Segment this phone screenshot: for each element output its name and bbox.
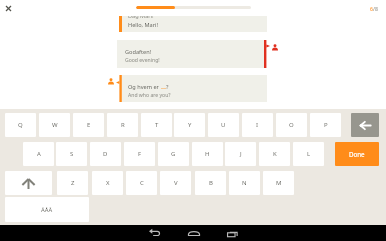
button[interactable]: L [293, 142, 324, 166]
button[interactable]: ÄÅÂ [5, 197, 89, 222]
button[interactable]: S [56, 142, 87, 166]
button[interactable]: B [195, 171, 226, 195]
button[interactable]: R [107, 113, 138, 137]
button[interactable]: J [225, 142, 256, 166]
button[interactable]: Done [335, 142, 379, 166]
staticText: B [209, 179, 213, 187]
staticText: Godaften! [125, 48, 152, 56]
button[interactable]: T [141, 113, 172, 137]
button[interactable]: U [208, 113, 239, 137]
staticText: T [155, 121, 159, 129]
staticText: W [52, 121, 58, 129]
staticText: Z [71, 179, 75, 187]
staticText: X [106, 179, 110, 187]
button[interactable]: W [39, 113, 70, 137]
button[interactable]: Back [138, 225, 171, 241]
staticText: K [273, 150, 277, 158]
button[interactable]: Recents [216, 225, 249, 241]
button[interactable]: C [126, 171, 157, 195]
button[interactable]: E [73, 113, 104, 137]
button[interactable]: P [310, 113, 341, 137]
staticText: Good evening! [125, 57, 160, 64]
staticText: /8 [373, 5, 378, 12]
staticText: F [138, 150, 142, 158]
staticText: E [87, 121, 91, 129]
button[interactable]: O [276, 113, 307, 137]
staticText: C [140, 179, 144, 187]
staticText: Dag Mari! [128, 16, 154, 20]
button[interactable]: M [263, 171, 294, 195]
staticText: D [103, 150, 108, 158]
staticText: And who are you? [128, 92, 171, 99]
staticText: H [205, 150, 210, 158]
staticText: V [174, 179, 178, 187]
button[interactable]: Y [174, 113, 205, 137]
button[interactable]: Q [5, 113, 36, 137]
button[interactable]: N [229, 171, 260, 195]
button[interactable]: Z [57, 171, 88, 195]
button[interactable]: A [23, 142, 54, 166]
button[interactable]: Backspace [351, 113, 379, 137]
staticText: S [70, 150, 74, 158]
staticText: I [256, 121, 259, 129]
button[interactable]: G [158, 142, 189, 166]
button[interactable]: F [124, 142, 155, 166]
button[interactable]: V [160, 171, 191, 195]
staticText: G [171, 150, 176, 158]
button[interactable]: H [192, 142, 223, 166]
button[interactable]: I [242, 113, 273, 137]
button[interactable]: K [259, 142, 290, 166]
staticText: N [242, 179, 247, 187]
staticText: O [289, 121, 294, 129]
staticText: ÄÅÂ [41, 206, 53, 214]
button[interactable]: Shift [5, 171, 52, 195]
button[interactable]: D [90, 142, 121, 166]
staticText: 6 [370, 5, 373, 12]
staticText: Q [18, 121, 23, 129]
staticText: M [276, 179, 282, 187]
staticText: U [221, 121, 226, 129]
staticText: P [324, 121, 328, 129]
staticText: ? [166, 83, 169, 91]
button[interactable]: Close [1, 1, 16, 16]
staticText: __ [161, 82, 166, 90]
staticText: Og hvem er [128, 83, 161, 91]
staticText: J [240, 150, 242, 158]
staticText: R [121, 121, 125, 129]
staticText: Hello, Mari! [128, 21, 158, 28]
button[interactable]: Home [177, 225, 210, 241]
staticText: Done [349, 150, 365, 158]
staticText: L [307, 150, 311, 158]
button[interactable]: X [92, 171, 123, 195]
staticText: Y [188, 121, 192, 129]
staticText: A [37, 150, 41, 158]
